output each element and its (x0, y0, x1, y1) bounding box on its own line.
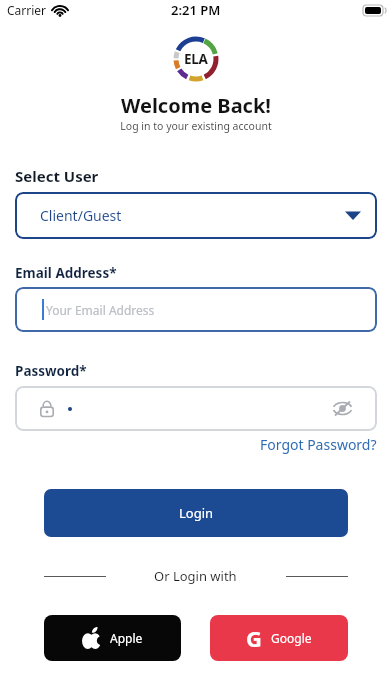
staticText: G (246, 623, 262, 653)
staticText: Email Address* (15, 264, 117, 282)
button[interactable]: Login (44, 489, 348, 537)
button[interactable] (15, 386, 377, 431)
staticText: Or Login with (154, 567, 237, 585)
staticText: Login (179, 504, 214, 522)
staticText: Apple (110, 630, 143, 646)
staticText: Select User (15, 166, 99, 186)
staticText: Google (271, 630, 312, 646)
staticText: Password* (15, 362, 87, 380)
staticText: Welcome Back! (0, 92, 392, 119)
button[interactable]: Your Email Address (15, 287, 377, 332)
button[interactable]: Apple (44, 615, 181, 661)
staticText: Your Email Address (46, 302, 155, 318)
staticText: 2:21 PM (171, 1, 221, 19)
staticText: Client/Guest (40, 206, 122, 225)
button[interactable]: Forgot Password? (260, 435, 377, 454)
staticText: Log in to your existing account (0, 119, 392, 133)
staticText: Carrier (7, 2, 47, 18)
button[interactable]: Client/Guest (15, 192, 377, 239)
staticText: ELA (184, 50, 208, 68)
button[interactable]: G (210, 615, 348, 661)
